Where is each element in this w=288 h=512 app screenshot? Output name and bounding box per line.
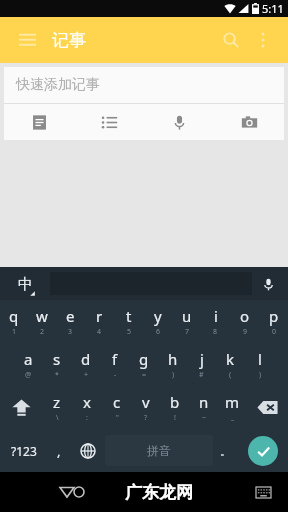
staticText: - [114,370,117,380]
staticText: p [269,306,279,326]
staticText: e [66,306,75,326]
staticText: b [170,392,180,412]
staticText: 6 [156,327,161,337]
staticText: f [112,349,118,369]
staticText: 5 [127,327,132,337]
button[interactable]: q [0,300,28,343]
button[interactable]: b [160,386,189,429]
button[interactable]: Input language Chinese [12,271,38,297]
button[interactable]: 。 [213,429,237,472]
button[interactable]: s [42,343,71,386]
button[interactable]: w [28,300,56,343]
staticText: 广东龙网 [125,482,193,503]
button[interactable]: ?123 [0,429,47,472]
staticText: ( [229,370,232,380]
staticText: g [139,349,149,369]
button[interactable]: t [114,300,143,343]
button[interactable]: Change keyboard language [71,429,105,472]
button[interactable]: g [129,343,158,386]
button[interactable]: Navigation menu [10,23,44,57]
staticText: j [200,349,204,369]
button[interactable]: Home [64,477,94,507]
staticText: 3 [68,327,73,337]
staticText: u [182,306,192,326]
button[interactable]: Confirm [248,436,278,466]
button[interactable]: k [216,343,245,386]
staticText: 。 [220,444,231,458]
staticText: n [199,392,209,412]
button[interactable]: Back [52,477,82,507]
staticText: 拼音 [147,443,171,458]
button[interactable]: Search [214,23,248,57]
staticText: 9 [243,327,248,337]
button[interactable]: p [259,300,288,343]
staticText: r [96,306,103,326]
staticText: , [57,442,61,460]
button[interactable]: i [201,300,230,343]
staticText: ~ [202,413,207,423]
staticText: h [168,349,178,369]
staticText: @ [25,370,32,380]
button[interactable]: o [230,300,259,343]
staticText: ) [259,370,262,380]
staticText: y [154,306,162,326]
staticText: q [9,306,19,326]
button[interactable]: More options [248,25,278,55]
staticText: ?123 [11,443,37,459]
button[interactable]: Voice note [144,104,214,140]
staticText: o [240,306,250,326]
staticText: + [84,370,89,380]
staticText: m [225,392,240,412]
staticText: k [226,349,235,369]
staticText: d [81,349,91,369]
button[interactable]: f [100,343,129,386]
staticText: 快速添加记事 [16,76,100,94]
staticText: x [83,392,91,412]
button[interactable]: u [172,300,201,343]
button[interactable]: m [218,386,247,429]
button[interactable]: Shift [0,386,42,429]
button[interactable]: c [102,386,131,429]
button[interactable]: h [158,343,187,386]
staticText: s [53,349,61,369]
button[interactable]: j [187,343,216,386]
staticText: 1 [12,327,17,337]
button[interactable]: l [245,343,274,386]
staticText: 8 [213,327,218,337]
button[interactable]: 拼音 [105,435,213,466]
button[interactable]: e [56,300,85,343]
staticText: t [126,306,132,326]
button[interactable]: Backspace [247,386,288,429]
staticText: 0 [272,327,277,337]
button[interactable]: a [14,343,42,386]
staticText: c [113,392,121,412]
staticText: ! [174,413,176,423]
button[interactable]: v [131,386,160,429]
staticText: ? [144,413,148,423]
button[interactable]: Checklist [74,104,144,140]
staticText: v [142,392,150,412]
button[interactable]: r [85,300,114,343]
staticText: l [258,349,262,369]
button[interactable]: Hide keyboard [250,479,276,505]
staticText: = [142,370,147,380]
staticText: : [86,413,88,423]
staticText: 2 [40,327,45,337]
button[interactable]: Text note [4,104,74,140]
staticText: 中 [18,275,33,294]
staticText: " [116,413,119,423]
staticText: i [214,306,218,326]
staticText: a [24,349,33,369]
staticText: _ [231,413,235,423]
button[interactable]: d [71,343,100,386]
button[interactable]: , [47,429,71,472]
staticText: w [36,306,48,326]
button[interactable]: Voice input [256,272,280,296]
button[interactable]: x [72,386,102,429]
staticText: \ [56,413,59,423]
button[interactable]: 快速添加记事 [4,67,284,140]
button[interactable]: z [42,386,72,429]
button[interactable]: y [143,300,172,343]
button[interactable]: n [189,386,218,429]
button[interactable]: Photo note [214,104,284,140]
